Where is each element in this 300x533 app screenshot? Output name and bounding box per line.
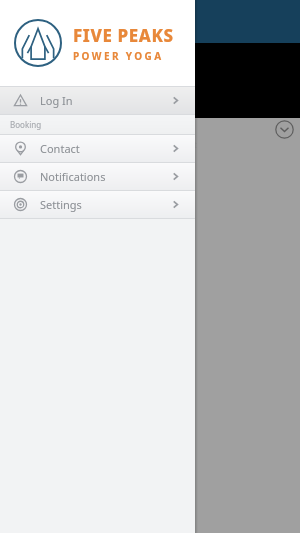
staticText: FIVE PEAKS xyxy=(73,24,174,47)
staticText: Contact xyxy=(40,141,80,156)
button[interactable]: Notifications xyxy=(0,163,195,190)
staticText: Booking xyxy=(10,119,42,130)
button[interactable] xyxy=(5,183,72,211)
button[interactable]: Contact xyxy=(0,135,195,162)
button[interactable]: Log In xyxy=(0,87,195,114)
staticText: POWER YOGA xyxy=(73,49,164,63)
staticText: Log In xyxy=(40,93,73,108)
button[interactable]: Expand xyxy=(275,120,294,139)
staticText: Settings xyxy=(40,197,82,212)
button[interactable]: FIVE PEAKS xyxy=(0,0,195,86)
staticText: rt xyxy=(190,138,197,150)
button[interactable]: Settings xyxy=(0,191,195,218)
staticText: Notifications xyxy=(40,169,106,184)
